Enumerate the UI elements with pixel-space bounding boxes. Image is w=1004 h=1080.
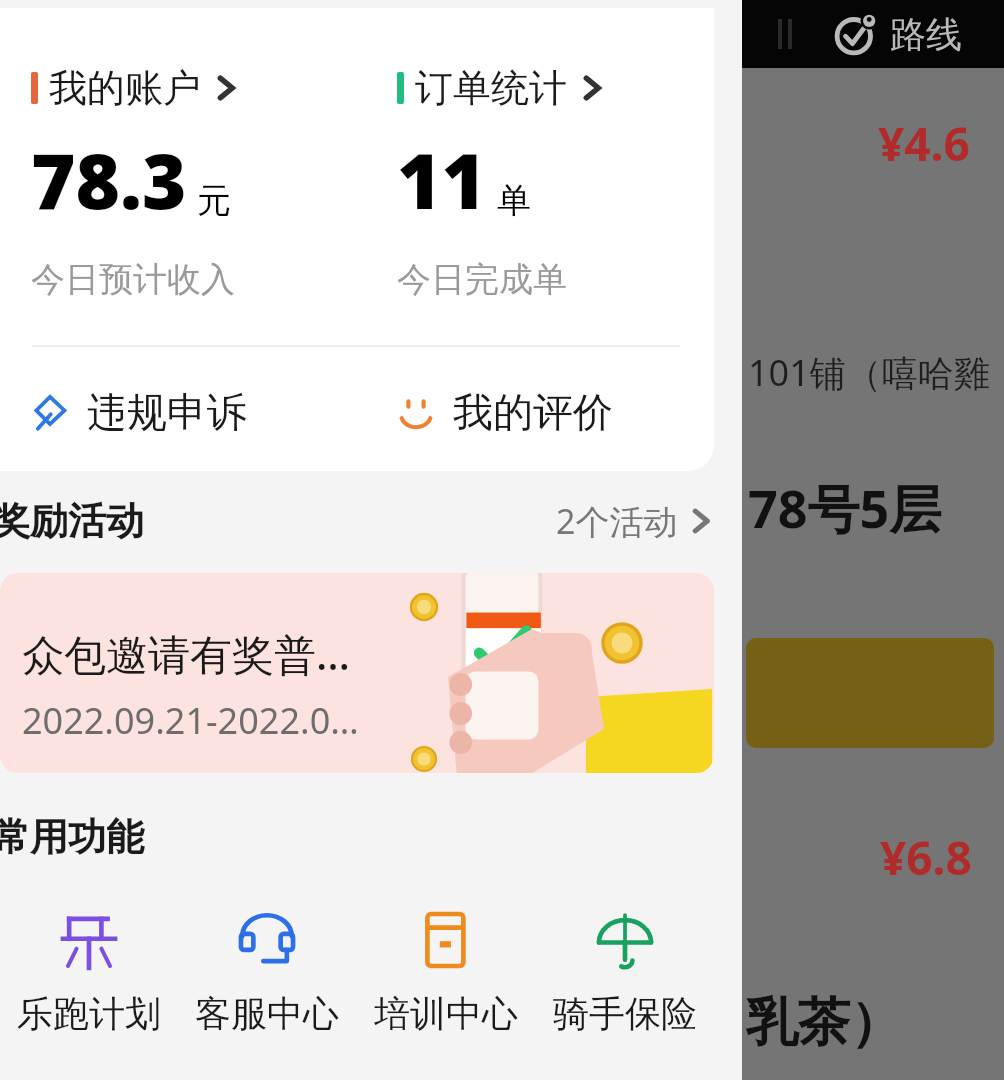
button[interactable]: 乐跑计划 <box>0 909 178 1036</box>
staticText: 客服中心 <box>195 991 339 1036</box>
other: 乐跑计划 <box>58 909 120 971</box>
staticText: ¥6.8 <box>880 826 972 889</box>
other: 培训中心 <box>415 909 477 971</box>
staticText: ¥4.6 <box>878 112 970 175</box>
other: 骑手保险 <box>594 909 656 971</box>
button[interactable]: 违规申诉 <box>0 387 366 437</box>
staticText: 元 <box>197 179 231 222</box>
other: 客服中心 <box>236 909 298 971</box>
staticText: 78.3 <box>31 128 187 232</box>
staticText: 奖励活动 <box>0 497 144 545</box>
staticText: 今日完成单 <box>397 258 567 301</box>
staticText: 101铺（嘻哈雞 <box>748 348 990 397</box>
button[interactable]: 我的评价 <box>366 387 696 437</box>
button[interactable]: 订单统计 <box>366 64 696 301</box>
staticText: 违规申诉 <box>87 387 247 437</box>
staticText: 今日预计收入 <box>31 258 235 301</box>
staticText: 单 <box>497 179 531 222</box>
button[interactable]: 众包邀请有奖普… <box>0 573 714 773</box>
staticText: 我的评价 <box>453 387 613 437</box>
staticText: 订单统计 <box>415 64 567 112</box>
other: 路线 <box>834 12 878 56</box>
staticText: 路线 <box>890 12 962 57</box>
staticText: 众包邀请有奖普… <box>22 625 351 682</box>
staticText: 2个活动 <box>556 498 678 544</box>
staticText: 乳茶） <box>746 990 902 1056</box>
button[interactable]: 奖励活动 <box>0 497 714 545</box>
staticText: 78号5层 <box>748 472 942 543</box>
staticText: 2022.09.21-2022.0… <box>22 696 359 745</box>
button[interactable]: 我的账户 <box>0 64 366 301</box>
staticText: 我的账户 <box>49 64 201 112</box>
button[interactable]: 客服中心 <box>178 909 356 1036</box>
staticText: 11 <box>397 128 487 232</box>
button[interactable]: 培训中心 <box>356 909 535 1036</box>
staticText: 常用功能 <box>0 813 144 861</box>
staticText: 培训中心 <box>374 991 518 1036</box>
staticText: 乐跑计划 <box>17 991 161 1036</box>
button[interactable]: 骑手保险 <box>535 909 714 1036</box>
staticText: 骑手保险 <box>553 991 697 1036</box>
other: 我的评价 <box>397 393 435 431</box>
other: 违规申诉 <box>31 393 69 431</box>
